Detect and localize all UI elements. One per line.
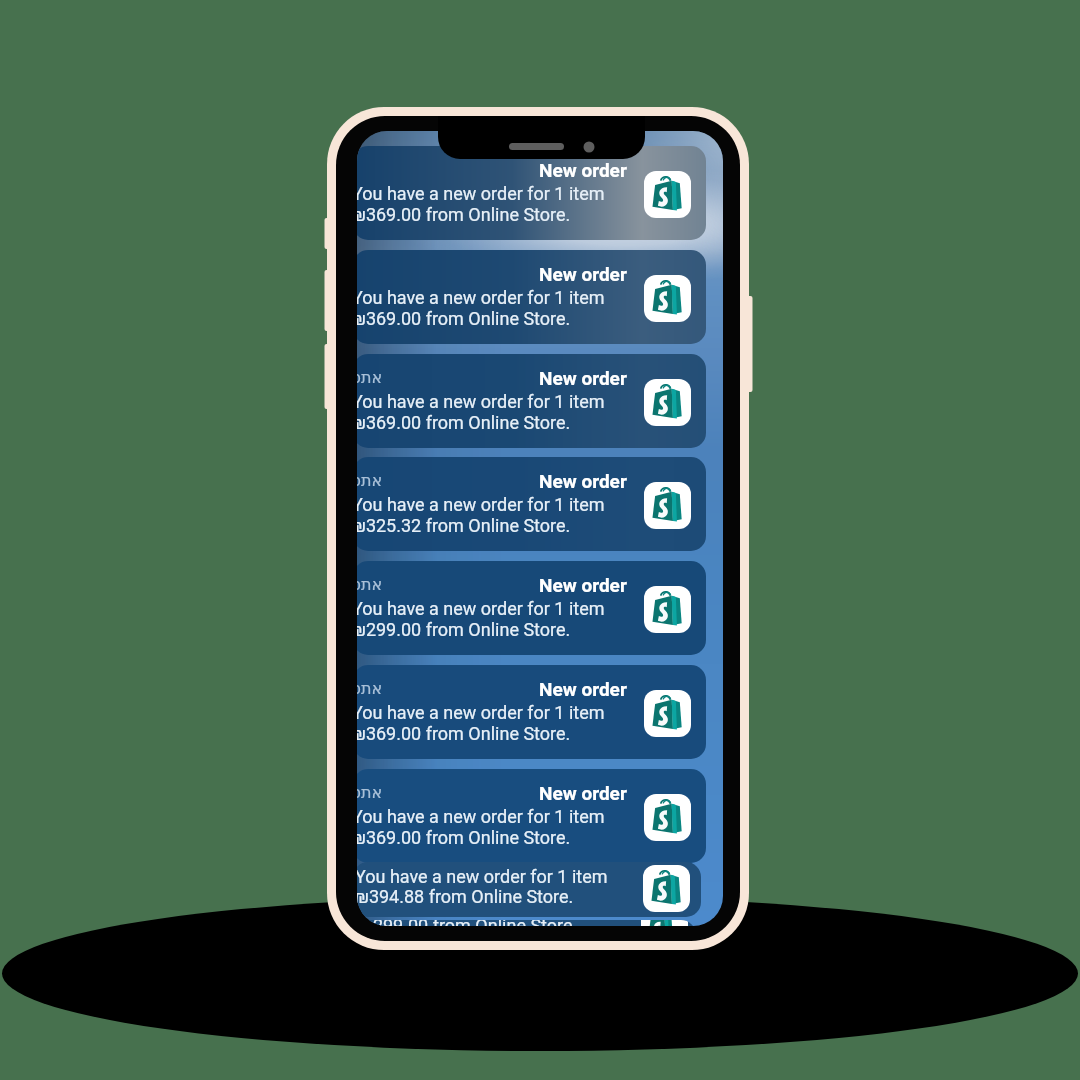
staticText: ₪299.00 from Online Store. xyxy=(357,619,571,640)
staticText: You have a new order for 1 item xyxy=(357,866,608,887)
staticText: ₪369.00 from Online Store. xyxy=(357,308,571,329)
staticText: אתכם xyxy=(357,679,383,698)
button[interactable]: New order xyxy=(357,250,706,344)
other: Shopify xyxy=(644,794,691,841)
staticText: New order xyxy=(539,782,627,804)
button[interactable]: אתכם xyxy=(357,354,706,448)
staticText: New order xyxy=(539,263,627,285)
staticText: ₪369.00 from Online Store. xyxy=(357,412,571,433)
staticText: New order xyxy=(539,159,627,181)
staticText: ₪369.00 from Online Store. xyxy=(357,204,571,225)
staticText: ₪369.00 from Online Store. xyxy=(357,723,571,744)
staticText: ₪369.00 from Online Store. xyxy=(357,827,571,848)
staticText: אתכם xyxy=(357,471,383,490)
button[interactable]: אתכם xyxy=(357,769,706,863)
staticText: ₪299.00 from Online Store. xyxy=(359,920,578,926)
button[interactable]: אתכם xyxy=(357,457,706,551)
staticText: New order xyxy=(539,678,627,700)
staticText: אתכם xyxy=(357,575,383,594)
other: Shopify xyxy=(644,171,691,218)
staticText: ₪394.88 from Online Store. xyxy=(357,886,574,907)
other: Shopify xyxy=(641,920,688,926)
staticText: You have a new order for 1 item xyxy=(357,287,605,308)
staticText: You have a new order for 1 item xyxy=(357,598,605,619)
staticText: אתכם xyxy=(357,783,383,802)
other: Shopify xyxy=(644,586,691,633)
staticText: You have a new order for 1 item xyxy=(357,494,605,515)
staticText: New order xyxy=(539,367,627,389)
staticText: אתכם xyxy=(357,368,383,387)
staticText: ₪325.32 from Online Store. xyxy=(357,515,571,536)
other: Shopify xyxy=(644,482,691,529)
staticText: You have a new order for 1 item xyxy=(357,391,605,412)
button[interactable]: אתכם xyxy=(357,561,706,655)
button[interactable]: אתכם xyxy=(357,665,706,759)
staticText: You have a new order for 1 item xyxy=(357,702,605,723)
staticText: New order xyxy=(539,470,627,492)
staticText: You have a new order for 1 item xyxy=(357,183,605,204)
staticText: You have a new order for 1 item xyxy=(357,806,605,827)
button[interactable]: ₪299.00 from Online Store. xyxy=(357,920,696,926)
other: Shopify xyxy=(644,690,691,737)
button[interactable]: New order xyxy=(357,146,706,240)
other: Shopify xyxy=(644,379,691,426)
staticText: New order xyxy=(539,574,627,596)
other: Shopify xyxy=(643,865,690,912)
button[interactable]: You have a new order for 1 item xyxy=(357,862,701,917)
other: Shopify xyxy=(644,275,691,322)
